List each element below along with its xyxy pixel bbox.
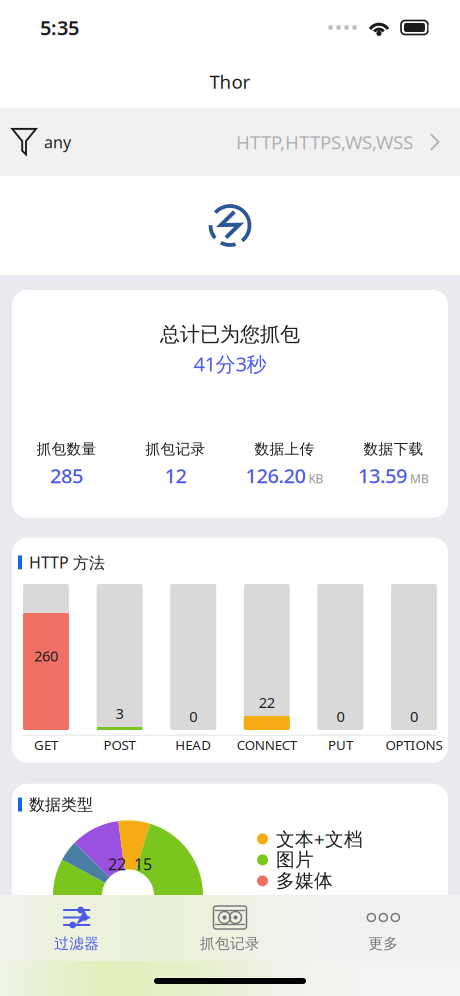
- staticText: any: [44, 131, 71, 153]
- button[interactable]: any: [0, 108, 460, 176]
- staticText: 260: [34, 646, 58, 666]
- staticText: 15: [134, 853, 152, 875]
- staticText: 数据下载: [363, 440, 423, 458]
- staticText: 0: [336, 707, 344, 726]
- staticText: HTTP,HTTPS,WS,WSS: [236, 130, 413, 154]
- staticText: 过滤器: [54, 934, 99, 952]
- staticText: 文本+文档: [276, 826, 363, 851]
- staticText: 0: [410, 707, 418, 726]
- staticText: 抓包记录: [145, 440, 205, 458]
- staticText: 0: [189, 707, 197, 726]
- staticText: 5:35: [40, 14, 79, 41]
- staticText: 3: [116, 704, 124, 723]
- staticText: PUT: [328, 736, 353, 754]
- staticText: 抓包数量: [36, 440, 96, 458]
- button[interactable]: 更多: [307, 895, 460, 960]
- staticText: 285: [50, 462, 83, 489]
- staticText: HTTP 方法: [29, 552, 105, 573]
- staticText: 12: [164, 462, 186, 489]
- staticText: 22: [108, 853, 126, 875]
- staticText: 126.20: [245, 462, 305, 489]
- staticText: KB: [308, 471, 323, 486]
- staticText: 多媒体: [276, 869, 333, 892]
- staticText: POST: [104, 736, 136, 754]
- button[interactable]: 抓包记录: [153, 895, 307, 960]
- staticText: 更多: [368, 934, 398, 952]
- staticText: Thor: [209, 69, 250, 94]
- staticText: 数据上传: [254, 440, 314, 458]
- staticText: 41分3秒: [193, 351, 266, 377]
- staticText: HEAD: [175, 736, 211, 754]
- staticText: 总计已为您抓包: [160, 322, 300, 347]
- staticText: 22: [259, 693, 275, 712]
- staticText: MB: [410, 471, 429, 486]
- staticText: 图片: [276, 848, 314, 871]
- staticText: CONNECT: [237, 736, 297, 754]
- staticText: OPTIONS: [385, 736, 442, 754]
- staticText: 13.59: [358, 462, 407, 489]
- button[interactable]: 过滤器: [0, 895, 153, 960]
- staticText: 抓包记录: [200, 934, 260, 952]
- staticText: 数据类型: [29, 795, 93, 814]
- staticText: GET: [34, 736, 58, 754]
